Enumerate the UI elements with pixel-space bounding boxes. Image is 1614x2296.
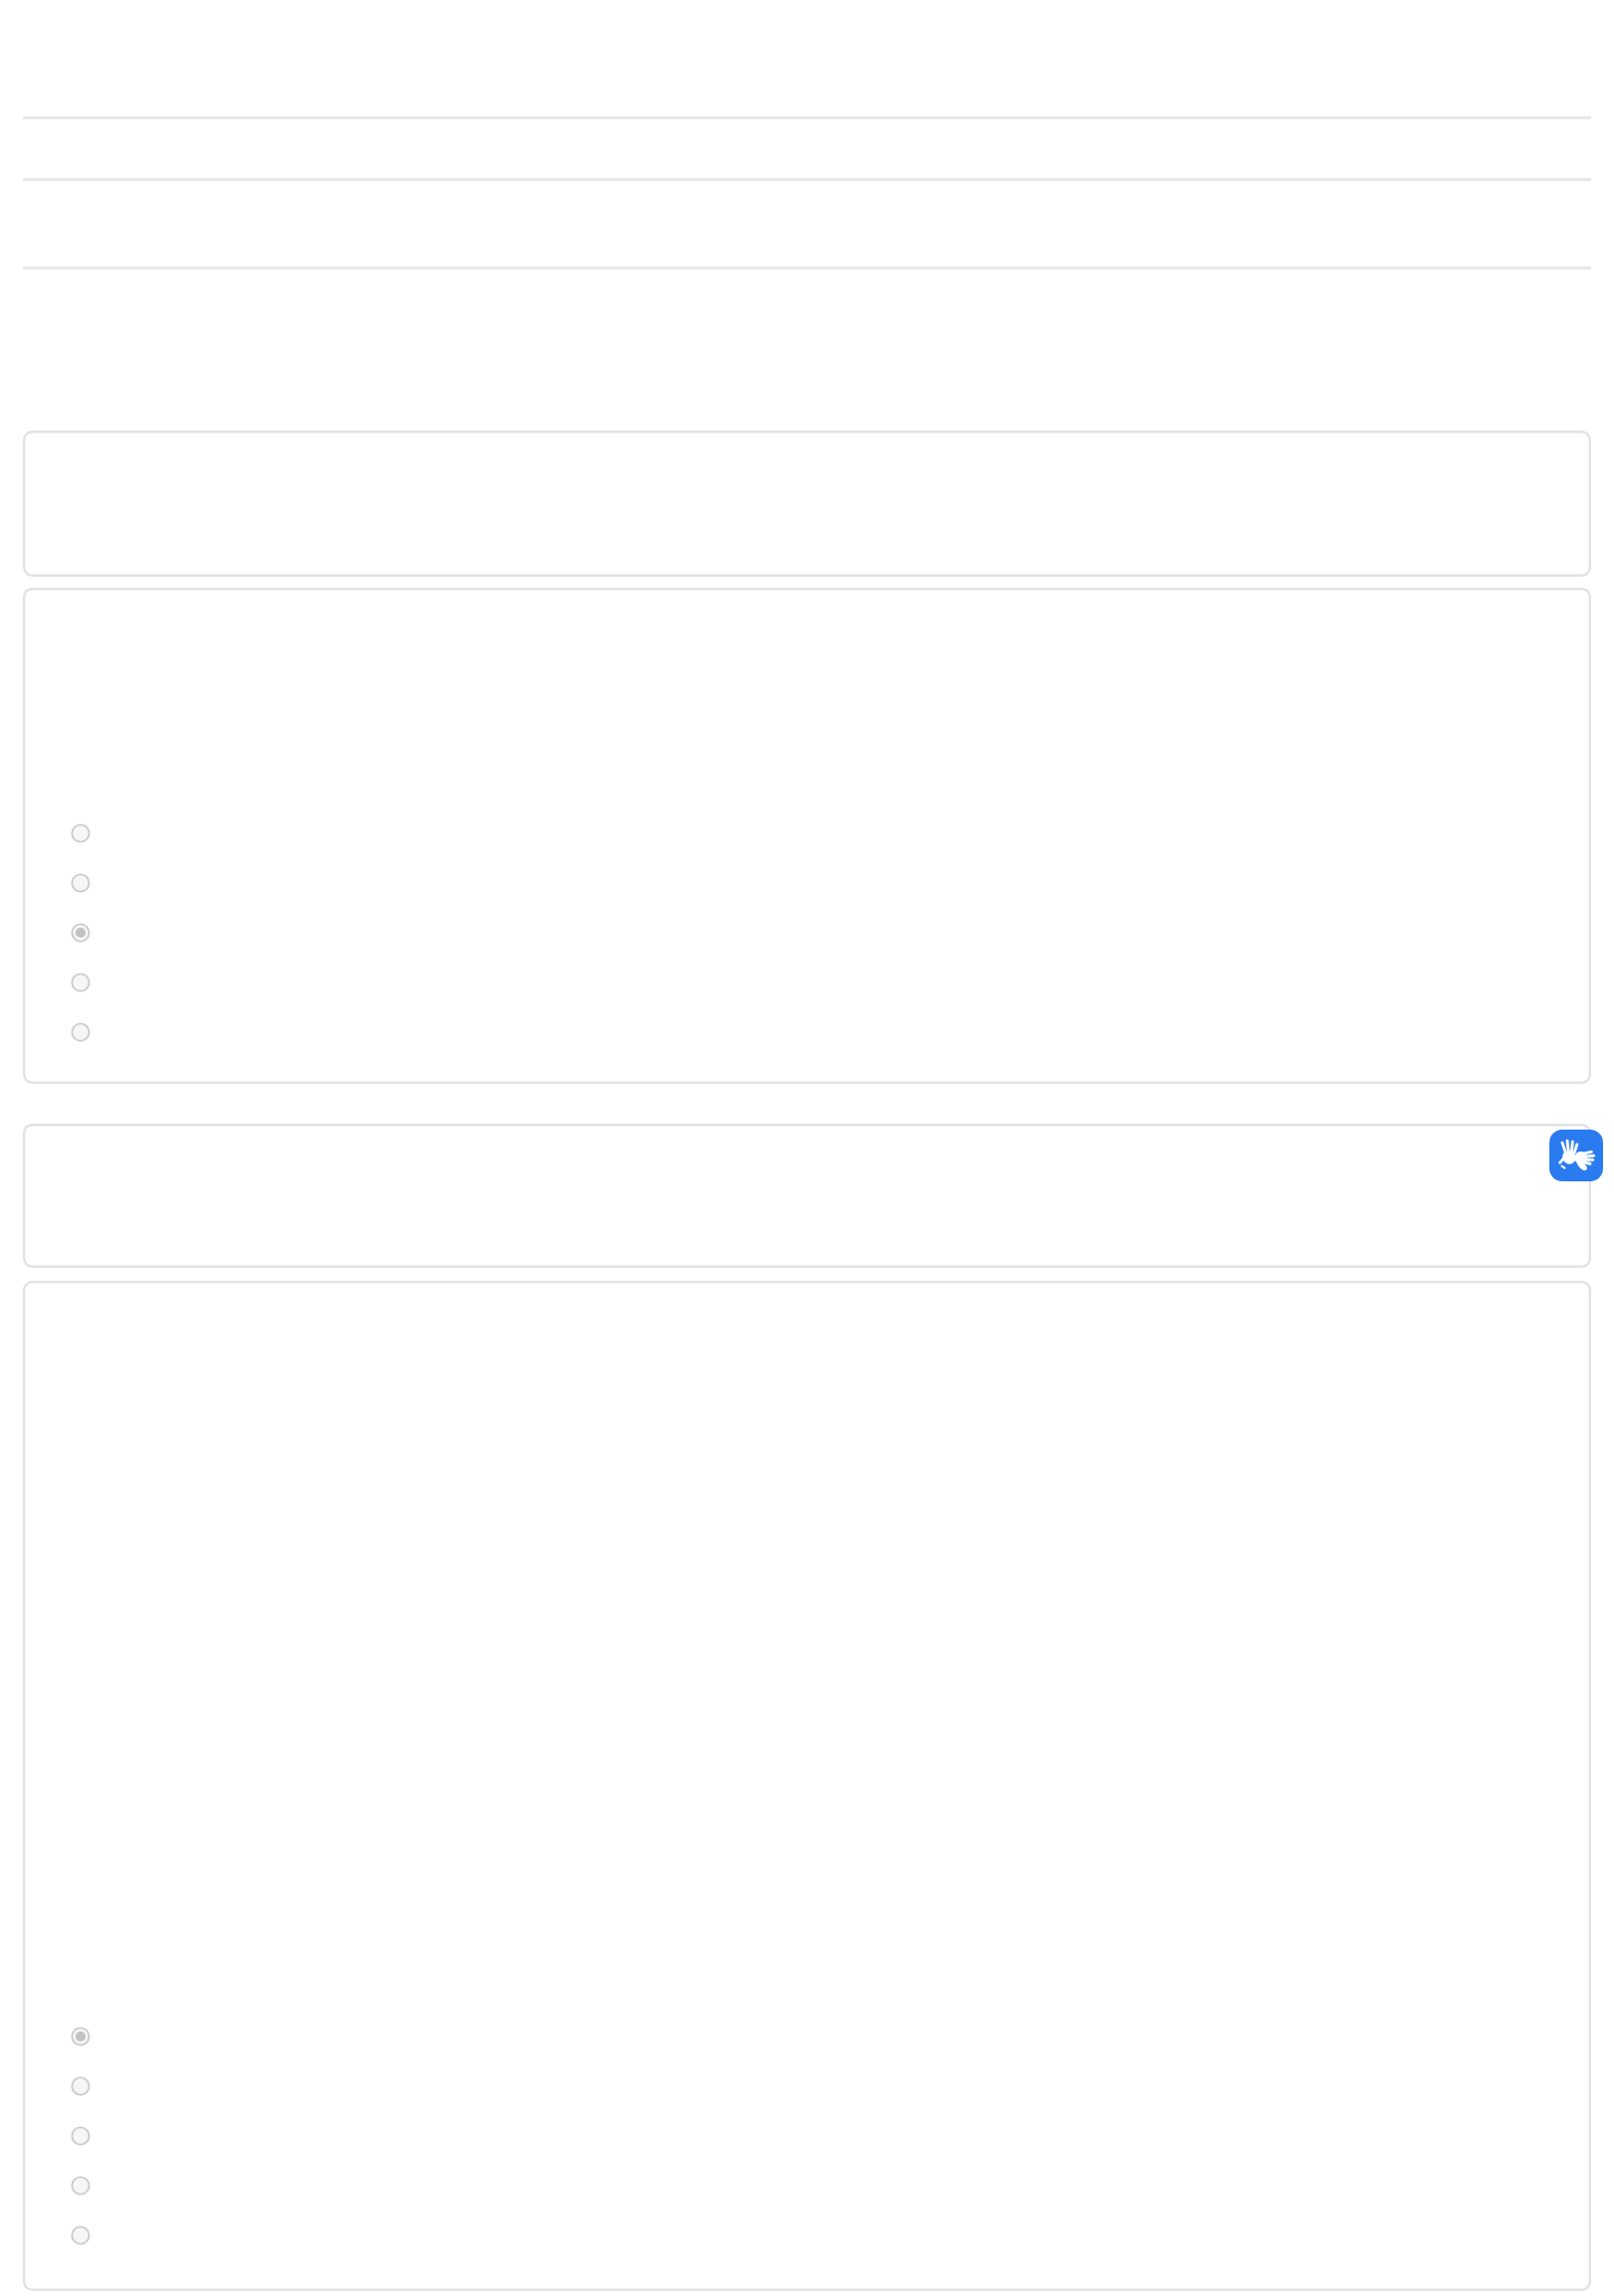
button[interactable]: [23, 1124, 1591, 1268]
button[interactable]: Sign language interpretation: [1549, 1130, 1603, 1181]
button[interactable]: [23, 431, 1591, 577]
button[interactable]: [23, 588, 1591, 1084]
